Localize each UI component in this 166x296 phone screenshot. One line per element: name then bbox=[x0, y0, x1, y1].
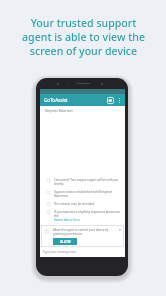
staticText: Your trusted support agent is able to vi… bbox=[22, 16, 145, 58]
button[interactable]: Share screen bbox=[106, 96, 115, 105]
staticText: This session may be recorded. bbox=[54, 202, 95, 206]
staticText: Benjamin Robertson bbox=[45, 109, 73, 113]
button[interactable]: Type your message here bbox=[40, 247, 125, 256]
button[interactable]: More options bbox=[116, 95, 123, 106]
staticText: GoToAssist bbox=[44, 97, 68, 103]
staticText: If you experience anything suspicious pl… bbox=[54, 210, 121, 218]
staticText: Support session established with Benjami… bbox=[54, 190, 113, 198]
staticText: Allow the agent to control your device b… bbox=[53, 228, 109, 236]
button[interactable]: Dismiss bbox=[118, 228, 122, 232]
staticText: ALLOW bbox=[60, 240, 71, 244]
button[interactable]: ALLOW bbox=[53, 238, 77, 245]
staticText: Type your message here bbox=[43, 250, 77, 254]
staticText: Connected. Your support agent will be wi… bbox=[54, 178, 119, 186]
button[interactable]: Report Abuse Form bbox=[54, 218, 81, 222]
